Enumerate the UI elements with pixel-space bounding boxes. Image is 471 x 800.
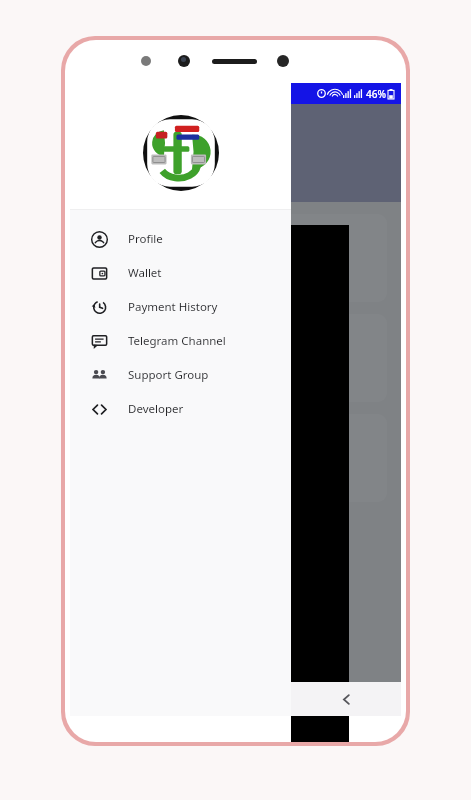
staticText: Support Group: [128, 367, 209, 383]
staticText: Telegram Channel: [128, 333, 226, 349]
staticText: Developer: [128, 401, 184, 417]
button[interactable]: Telegram Channel: [70, 324, 291, 358]
staticText: Payment History: [128, 299, 218, 315]
staticText: 46%: [366, 87, 386, 101]
staticText: Wallet: [128, 265, 162, 281]
staticText: 01712345693: [86, 159, 162, 175]
button[interactable]: Back: [291, 682, 401, 716]
staticText: Profile: [128, 231, 163, 247]
button[interactable]: History: [84, 314, 387, 402]
button[interactable]: Support Group: [70, 358, 291, 392]
button[interactable]: Profile: [70, 222, 291, 256]
button[interactable]: Payment History: [70, 290, 291, 324]
button[interactable]: Wallet: [70, 256, 291, 290]
staticText: Abdul Mamun: [86, 138, 177, 156]
button[interactable]: Daily Bonus: [84, 214, 387, 302]
button[interactable]: Developer: [70, 392, 291, 426]
button[interactable]: Withdraw: [84, 414, 387, 502]
